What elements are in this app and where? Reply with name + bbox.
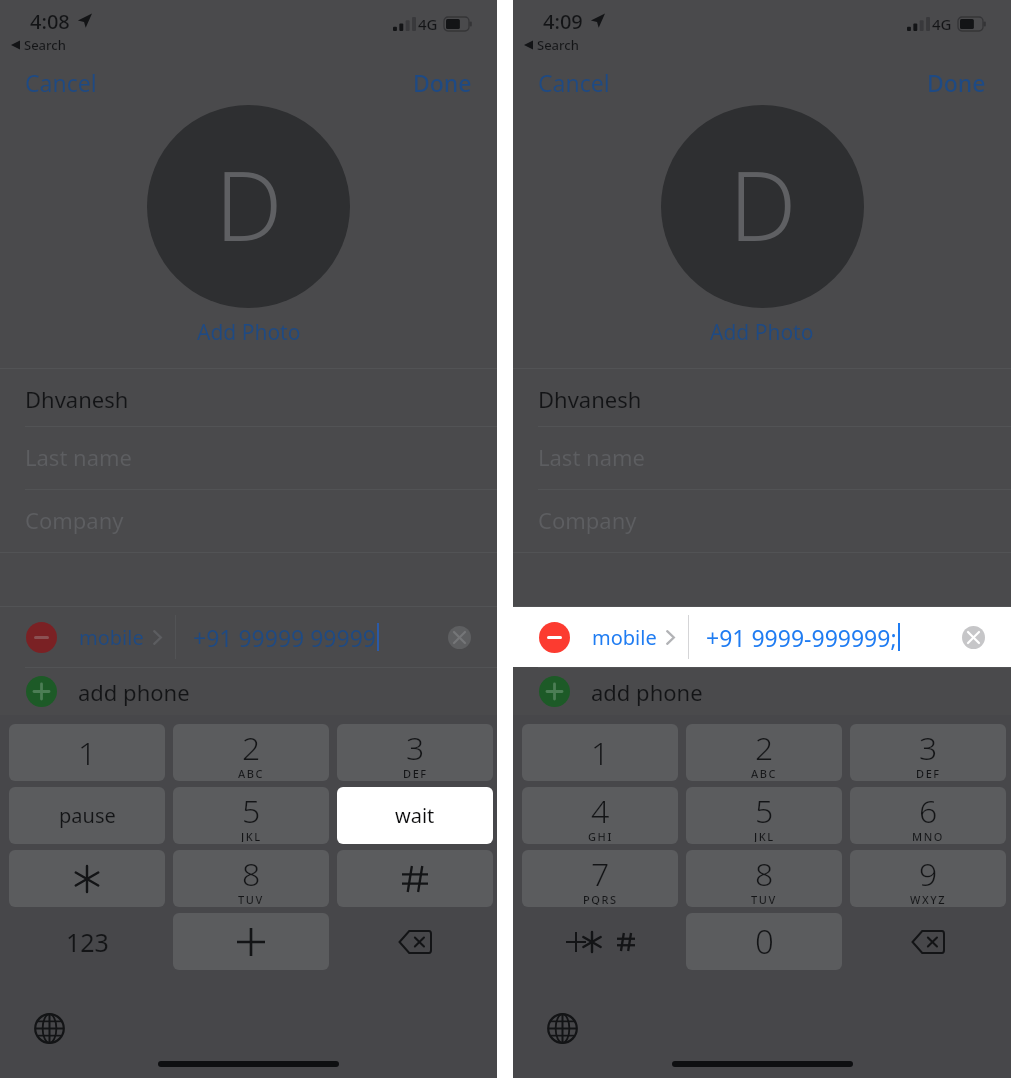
button[interactable]: add phone [513,668,1011,715]
staticText: mobile [592,624,657,651]
staticText: 8 [242,852,261,896]
staticText: add phone [591,677,703,707]
staticText: Search [24,36,66,54]
staticText: GHI [588,829,613,842]
button[interactable]: Delete [850,913,1006,970]
button[interactable]: Contact photo [147,105,350,308]
other: Remove phone number [539,622,570,653]
button[interactable]: Numbers [9,913,165,970]
button[interactable]: 1 [522,724,678,781]
button[interactable]: 7 [522,850,678,907]
staticText: 5 [242,789,261,833]
staticText: Dhvanesh [538,384,642,414]
staticText: Company [25,505,124,535]
staticText: 4 [591,789,610,833]
button[interactable]: Change keyboard [547,1013,578,1044]
staticText: DEF [916,766,941,779]
staticText: JKL [754,829,775,842]
staticText: TUV [751,892,777,905]
staticText: PQRS [583,892,618,905]
button[interactable]: Done [907,62,1011,103]
button[interactable]: Change keyboard [34,1013,65,1044]
button[interactable]: Zero [686,913,842,970]
button[interactable]: Plus [173,913,329,970]
staticText: D [215,139,283,268]
staticText: mobile [79,624,144,651]
other: Clear text [448,626,471,649]
button[interactable]: add phone [0,668,497,715]
button[interactable]: Add Photo [185,316,313,349]
button[interactable]: pause [9,787,165,844]
staticText: Add Photo [197,318,301,347]
button[interactable]: Dhvanesh [513,368,1011,430]
button[interactable]: Cancel [513,62,630,103]
staticText: +91 99999 99999 [193,622,376,653]
button[interactable]: Remove phone number [513,607,1011,667]
staticText: 7 [591,852,610,896]
button[interactable]: 3 [337,724,493,781]
button[interactable]: wait [337,787,493,844]
button[interactable]: 8 [686,850,842,907]
staticText: 2 [755,726,774,770]
button[interactable]: 1 [9,724,165,781]
staticText: ABC [238,766,265,779]
staticText: WXYZ [910,892,947,905]
staticText: TUV [238,892,264,905]
staticText: JKL [241,829,262,842]
staticText: 4G [932,14,952,34]
staticText: Last name [538,442,645,472]
button[interactable]: 5 [686,787,842,844]
staticText: pause [59,802,116,829]
staticText: 3 [919,726,938,770]
button[interactable]: 4 [522,787,678,844]
button[interactable]: 6 [850,787,1006,844]
button[interactable]: 2 [173,724,329,781]
staticText: Done [927,67,986,98]
staticText: 5 [755,789,774,833]
staticText: 3 [406,726,425,770]
staticText: DEF [403,766,428,779]
button[interactable] [337,850,493,907]
button[interactable]: 8 [173,850,329,907]
staticText: 1 [591,731,610,775]
staticText: add phone [78,677,190,707]
staticText: 0 [755,919,774,964]
button[interactable]: Remove phone number [0,607,497,667]
staticText: wait [395,802,435,829]
staticText: 9 [919,852,938,896]
button[interactable]: Delete [337,913,493,970]
button[interactable]: Symbols [522,913,678,970]
staticText: D [729,139,797,268]
staticText: +91 9999-999999; [706,622,897,653]
button[interactable]: Cancel [0,62,117,103]
button[interactable]: Done [393,62,497,103]
button[interactable]: 5 [173,787,329,844]
button[interactable]: Add Photo [698,316,826,349]
other: Remove phone number [26,622,57,653]
button[interactable]: 2 [686,724,842,781]
button[interactable]: Contact photo [661,105,864,308]
button[interactable]: Dhvanesh [0,368,497,430]
staticText: Cancel [538,67,610,98]
staticText: 4:08 [30,8,70,35]
staticText: 1 [78,731,97,775]
staticText: 8 [755,852,774,896]
staticText: Last name [25,442,132,472]
button[interactable] [9,850,165,907]
staticText: Cancel [25,67,97,98]
button[interactable]: 3 [850,724,1006,781]
staticText: Search [537,36,579,54]
staticText: MNO [912,829,945,842]
button[interactable]: 9 [850,850,1006,907]
staticText: 123 [66,925,109,959]
staticText: ABC [751,766,778,779]
staticText: 4G [418,14,438,34]
other: Clear text [962,626,985,649]
staticText: Dhvanesh [25,384,129,414]
staticText: 4:09 [543,8,583,35]
staticText: 6 [919,789,938,833]
